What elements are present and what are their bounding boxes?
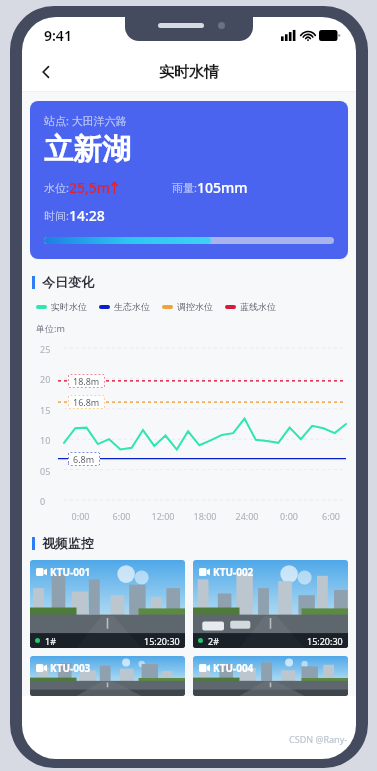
staticText: 6:00 bbox=[101, 510, 142, 522]
staticText: 今日变化 bbox=[42, 274, 94, 290]
staticText: 立新湖 bbox=[44, 131, 131, 168]
staticText: KTU-002 bbox=[213, 565, 254, 579]
staticText: 14:28 bbox=[69, 206, 105, 225]
staticText: 20 bbox=[40, 373, 51, 385]
staticText: 1# bbox=[45, 635, 56, 647]
staticText: 25 bbox=[40, 343, 51, 355]
staticText: 12:00 bbox=[142, 510, 184, 522]
staticText: 生态水位 bbox=[114, 301, 150, 312]
staticText: 15 bbox=[40, 404, 51, 416]
staticText: 视频监控 bbox=[42, 535, 94, 551]
button[interactable]: Camera KTU-004 bbox=[193, 656, 348, 696]
staticText: 25,5m bbox=[69, 178, 111, 197]
staticText: 15:20:30 bbox=[307, 635, 343, 647]
staticText: 实时水情 bbox=[159, 63, 219, 82]
staticText: 15:20:30 bbox=[144, 635, 180, 647]
staticText: 6.8m bbox=[73, 453, 95, 465]
staticText: 蓝线水位 bbox=[240, 301, 276, 312]
button[interactable]: 调控水位 bbox=[162, 301, 213, 312]
staticText: KTU-004 bbox=[213, 661, 254, 675]
staticText: 16.8m bbox=[73, 396, 100, 408]
button[interactable]: 蓝线水位 bbox=[225, 301, 276, 312]
staticText: KTU-001 bbox=[50, 565, 91, 579]
staticText: 24:00 bbox=[226, 510, 268, 522]
staticText: 0:00 bbox=[60, 510, 101, 522]
button[interactable]: 生态水位 bbox=[99, 301, 150, 312]
staticText: 水位: bbox=[44, 180, 69, 195]
staticText: KTU-003 bbox=[50, 661, 91, 675]
staticText: 105mm bbox=[197, 178, 248, 197]
staticText: 18.8m bbox=[73, 375, 100, 387]
button[interactable]: 站点: 大田洋六路 bbox=[30, 101, 348, 259]
staticText: 调控水位 bbox=[177, 301, 213, 312]
staticText: 0:00 bbox=[268, 510, 310, 522]
button[interactable]: 实时水位 bbox=[36, 301, 87, 312]
staticText: 2# bbox=[208, 635, 219, 647]
staticText: 时间: bbox=[44, 208, 69, 223]
staticText: 0 bbox=[40, 495, 46, 507]
staticText: 18:00 bbox=[184, 510, 226, 522]
staticText: 10 bbox=[40, 434, 51, 446]
staticText: 05 bbox=[40, 465, 51, 477]
staticText: 6:00 bbox=[310, 510, 352, 522]
staticText: 单位:m bbox=[36, 322, 65, 334]
button[interactable]: Camera KTU-001 bbox=[30, 560, 185, 648]
button[interactable]: Camera KTU-002 bbox=[193, 560, 348, 648]
staticText: 站点: 大田洋六路 bbox=[44, 113, 127, 128]
button[interactable]: Back bbox=[30, 56, 62, 88]
staticText: 实时水位 bbox=[51, 301, 87, 312]
staticText: 9:41 bbox=[44, 26, 72, 45]
button[interactable]: Camera KTU-003 bbox=[30, 656, 185, 696]
staticText: CSDN @Rany- bbox=[289, 733, 348, 745]
staticText: 雨量: bbox=[172, 180, 197, 195]
